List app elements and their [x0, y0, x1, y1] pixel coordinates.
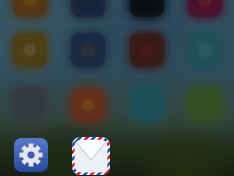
- button[interactable]: Settings: [14, 138, 48, 172]
- button[interactable]: Mail: [72, 137, 110, 175]
